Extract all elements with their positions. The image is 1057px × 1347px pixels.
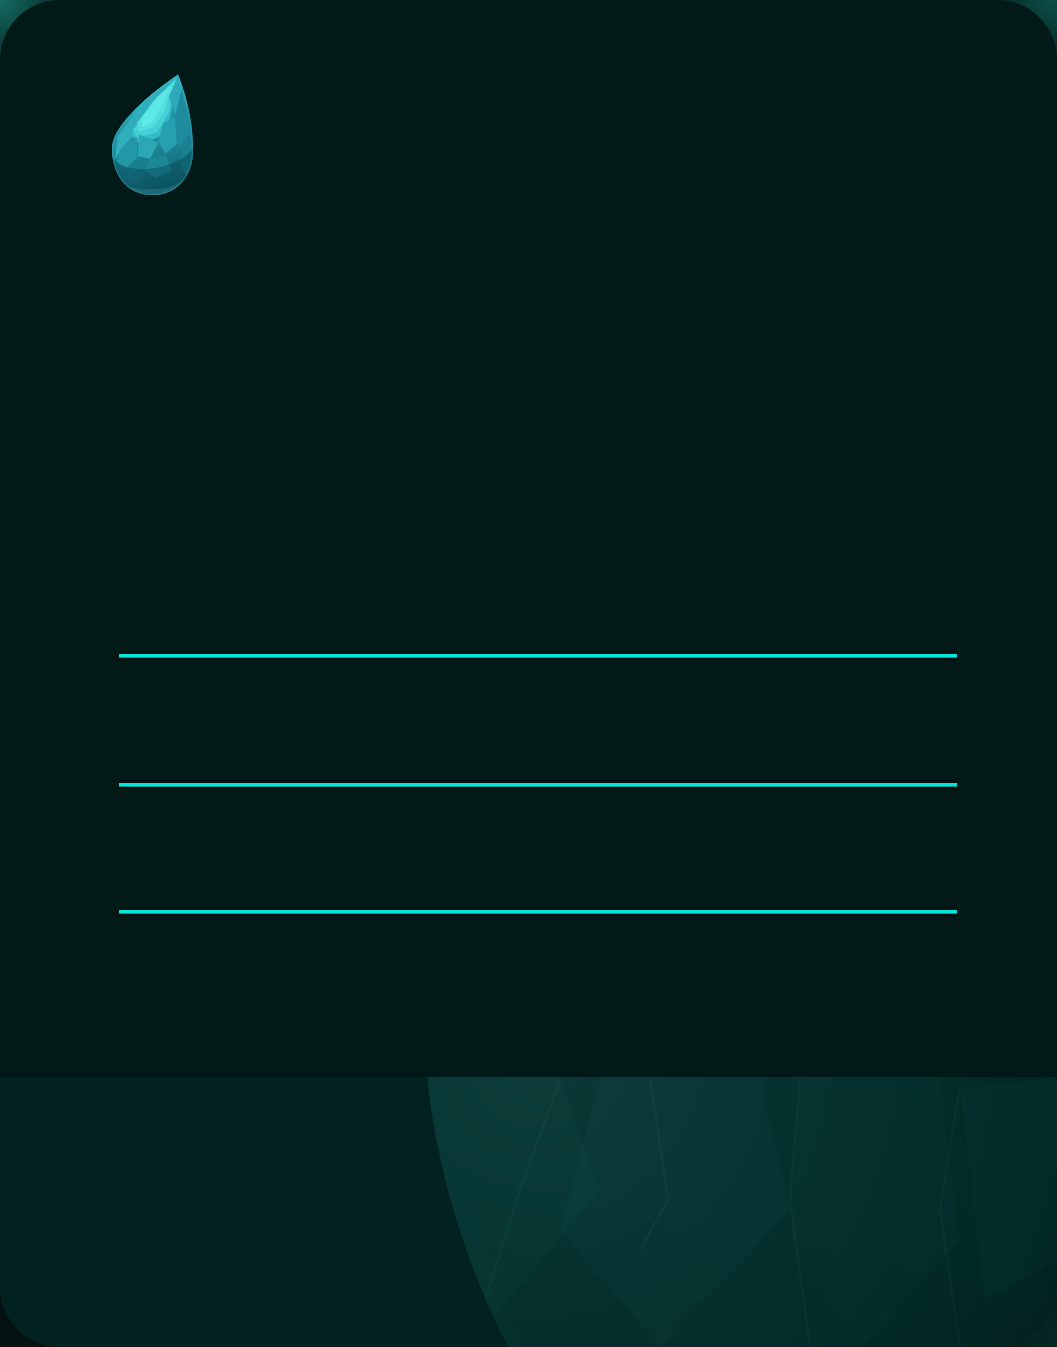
button[interactable]: Password field [119,739,957,831]
button[interactable]: Email field [119,610,957,702]
button[interactable]: Confirm password field [119,866,957,958]
button[interactable]: Water drop app logo [112,74,193,195]
